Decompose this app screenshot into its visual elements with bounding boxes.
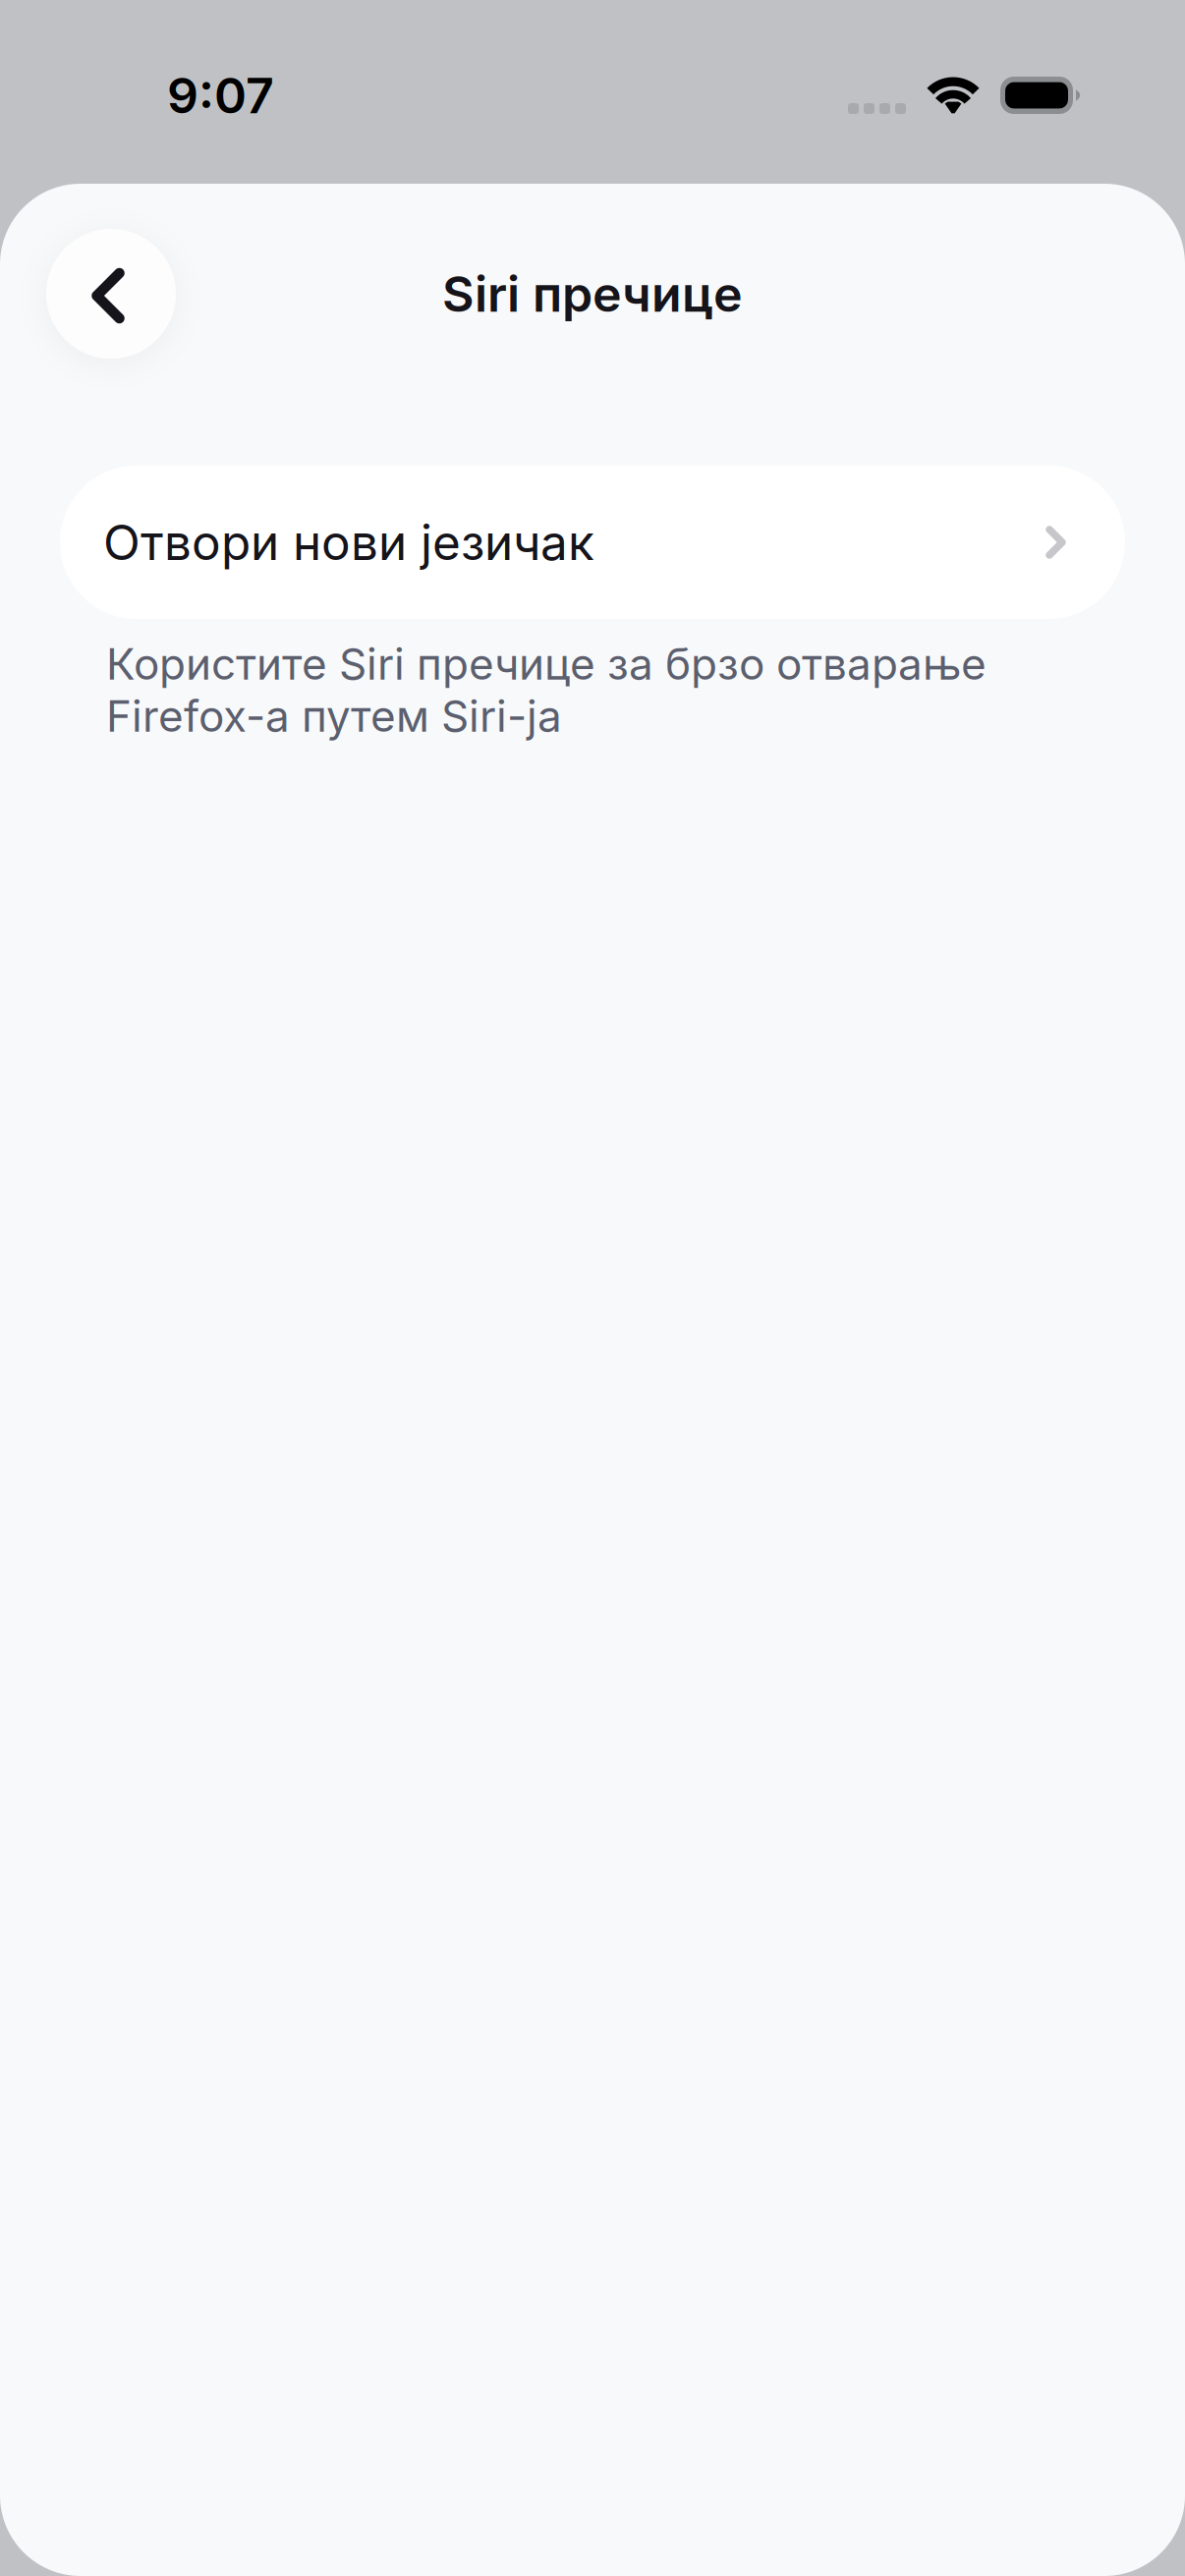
- staticText: Отвори нови језичак: [103, 513, 594, 572]
- staticText: 9:07: [167, 66, 274, 125]
- staticText: Siri пречице: [442, 264, 743, 324]
- button[interactable]: Отвори нови језичак: [60, 466, 1125, 619]
- button[interactable]: Back: [46, 229, 176, 359]
- staticText: Користите Siri пречице за брзо отварање …: [106, 638, 987, 742]
